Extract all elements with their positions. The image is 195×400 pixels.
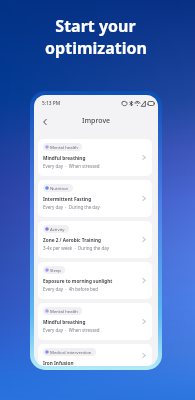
button[interactable]: Activity	[38, 221, 152, 258]
staticText: 5:13 PM	[42, 100, 61, 107]
button[interactable]: Mental health	[38, 139, 152, 176]
staticText: Start your	[55, 15, 136, 37]
staticText: Mental health	[50, 308, 78, 314]
button[interactable]: Nutrition	[38, 180, 152, 217]
staticText: Intermittent Fasting	[43, 196, 92, 202]
staticText: Mindful breathing	[43, 155, 86, 161]
staticText: Mindful breathing	[43, 319, 86, 325]
staticText: Every day · When stressed	[43, 163, 100, 169]
staticText: Medical intervention	[50, 349, 92, 355]
staticText: Activity	[50, 226, 65, 232]
staticText: Mental health	[50, 144, 78, 150]
staticText: Every day · 4h before bed	[43, 286, 98, 292]
staticText: Improve	[82, 116, 111, 126]
staticText: Every day · When stressed	[43, 327, 100, 333]
button[interactable]: Sleep	[38, 262, 152, 299]
staticText: 3-4x per week · During the day	[43, 245, 109, 251]
staticText: Every day · During the day	[43, 204, 100, 210]
button[interactable]: Mental health	[38, 303, 152, 340]
staticText: Nutrition	[50, 185, 69, 191]
button[interactable]: Medical intervention	[38, 344, 152, 366]
button[interactable]: Back	[39, 116, 50, 127]
staticText: Iron Infusion	[43, 360, 74, 366]
staticText: optimization	[45, 37, 147, 59]
staticText: Zone 2 / Aerobic Training	[43, 237, 101, 243]
staticText: Sleep	[50, 267, 61, 273]
staticText: Exposure to morning sunlight	[43, 278, 113, 284]
